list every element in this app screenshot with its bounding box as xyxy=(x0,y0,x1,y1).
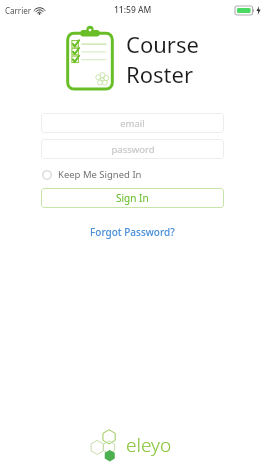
button[interactable]: Sign In xyxy=(41,188,224,208)
staticText: Carrier xyxy=(5,5,32,16)
button[interactable]: Keep Me Signed In xyxy=(41,166,142,183)
staticText: eleyo xyxy=(126,432,172,458)
staticText: password xyxy=(111,143,155,156)
button[interactable]: Forgot Password? xyxy=(84,222,181,242)
staticText: Keep Me Signed In xyxy=(58,168,142,181)
staticText: email xyxy=(120,117,145,130)
staticText: Roster xyxy=(126,59,193,89)
staticText: 11:59 AM xyxy=(114,4,152,16)
button[interactable]: Eleyo xyxy=(89,427,176,463)
button[interactable]: email xyxy=(41,113,224,133)
staticText: Course xyxy=(126,29,199,59)
button[interactable]: password xyxy=(41,139,224,159)
staticText: Sign In xyxy=(116,191,149,205)
